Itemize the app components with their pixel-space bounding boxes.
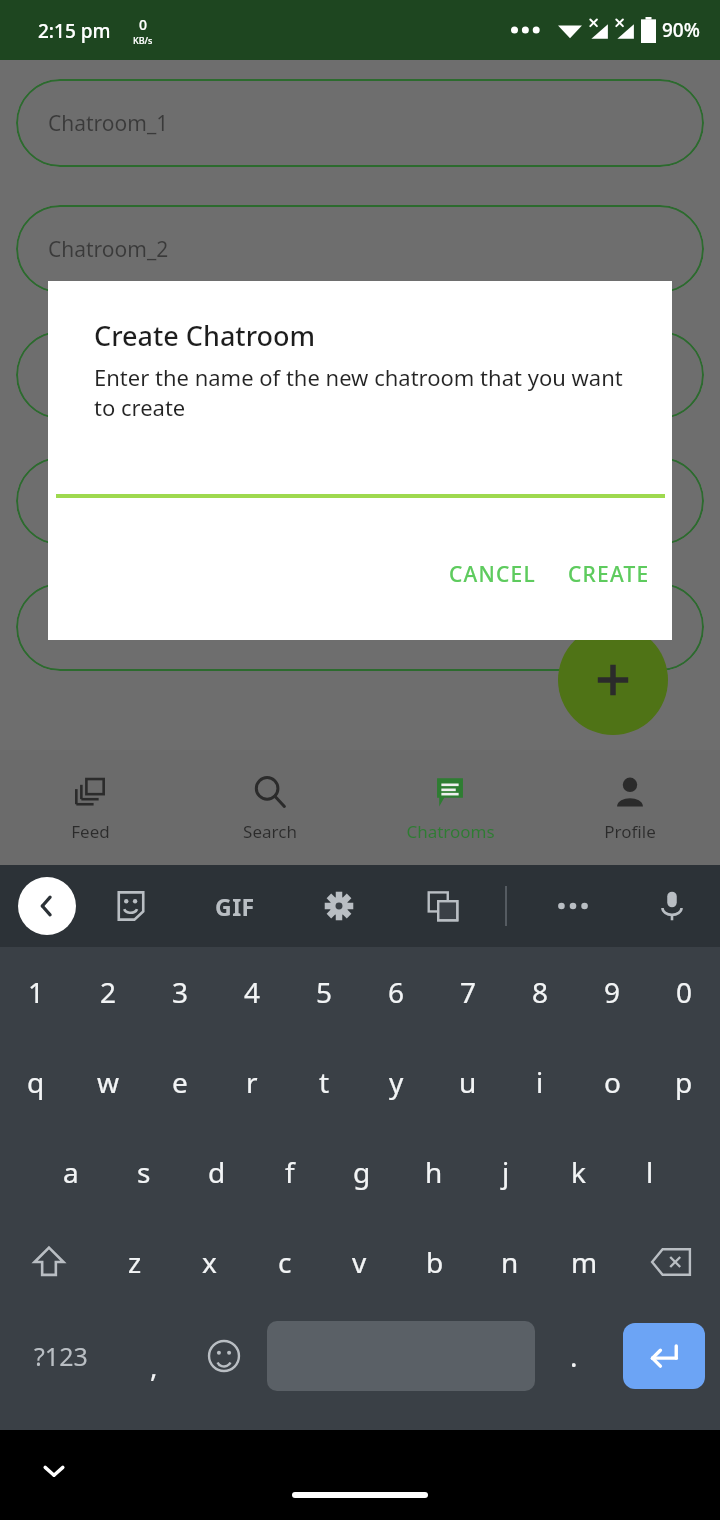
staticText: 0 xyxy=(676,973,693,1011)
button[interactable]: 5 xyxy=(288,947,360,1037)
staticText: 7 xyxy=(460,973,477,1011)
staticText: Search xyxy=(243,820,297,843)
staticText: c xyxy=(278,1243,292,1281)
button[interactable]: o xyxy=(576,1037,648,1127)
staticText: g xyxy=(353,1153,371,1191)
staticText: s xyxy=(137,1153,151,1191)
staticText: 8 xyxy=(532,973,549,1011)
button[interactable]: s xyxy=(107,1127,180,1217)
button[interactable]: Search xyxy=(180,750,360,865)
button[interactable]: y xyxy=(360,1037,432,1127)
button[interactable]: 1 xyxy=(0,947,72,1037)
staticText: n xyxy=(501,1243,519,1281)
staticText: b xyxy=(426,1243,444,1281)
button[interactable]: 8 xyxy=(504,947,576,1037)
staticText: e xyxy=(172,1063,188,1101)
staticText: GIF xyxy=(215,891,255,922)
staticText: i xyxy=(536,1063,544,1101)
button[interactable]: Chatroom_1 xyxy=(16,79,704,167)
button[interactable]: i xyxy=(504,1037,576,1127)
button[interactable]: h xyxy=(398,1127,470,1217)
button[interactable]: Back xyxy=(18,877,76,935)
button[interactable]: Settings xyxy=(311,878,367,934)
button[interactable]: Create chatroom xyxy=(558,625,668,735)
staticText: 4 xyxy=(244,973,261,1011)
button[interactable]: 9 xyxy=(576,947,648,1037)
button[interactable]: More options xyxy=(545,878,601,934)
button[interactable]: 4 xyxy=(216,947,288,1037)
staticText: 3 xyxy=(172,973,189,1011)
button[interactable]: Stickers xyxy=(103,878,159,934)
button[interactable]: v xyxy=(322,1217,397,1307)
button[interactable]: 2 xyxy=(72,947,144,1037)
button[interactable]: 0 xyxy=(648,947,720,1037)
button[interactable]: c xyxy=(247,1217,322,1307)
button[interactable]: GIF xyxy=(207,883,263,930)
staticText: 9 xyxy=(604,973,621,1011)
button[interactable]: Hide keyboard xyxy=(28,1445,80,1497)
button[interactable]: d xyxy=(180,1127,253,1217)
button[interactable]: x xyxy=(172,1217,247,1307)
button[interactable]: m xyxy=(547,1217,622,1307)
button[interactable]: z xyxy=(97,1217,172,1307)
staticText: Profile xyxy=(604,820,656,843)
button[interactable]: Feed xyxy=(0,750,180,865)
staticText: Create Chatroom xyxy=(94,317,316,354)
button[interactable]: g xyxy=(326,1127,398,1217)
staticText: k xyxy=(571,1153,586,1191)
button[interactable]: a xyxy=(34,1127,107,1217)
button[interactable]: 7 xyxy=(432,947,504,1037)
button[interactable]: k xyxy=(542,1127,614,1217)
button[interactable]: 6 xyxy=(360,947,432,1037)
staticText: f xyxy=(285,1153,295,1191)
staticText: 6 xyxy=(388,973,405,1011)
button[interactable]: . xyxy=(541,1307,607,1404)
button[interactable]: 3 xyxy=(144,947,216,1037)
button[interactable]: Chatrooms xyxy=(360,750,540,865)
button[interactable]: Profile xyxy=(540,750,720,865)
staticText: . xyxy=(570,1337,578,1375)
button[interactable]: Shift xyxy=(0,1217,97,1307)
button[interactable]: Chatroom_5 xyxy=(16,583,704,671)
button[interactable]: t xyxy=(288,1037,360,1127)
button[interactable]: w xyxy=(72,1037,144,1127)
button[interactable]: n xyxy=(472,1217,547,1307)
button[interactable]: Chatroom_2 xyxy=(16,205,704,293)
staticText: z xyxy=(128,1243,142,1281)
button[interactable]: p xyxy=(648,1037,720,1127)
button[interactable]: q xyxy=(0,1037,72,1127)
staticText: Feed xyxy=(71,820,110,843)
button[interactable]: f xyxy=(253,1127,326,1217)
staticText: x xyxy=(202,1243,217,1281)
button[interactable]: e xyxy=(144,1037,216,1127)
staticText: Chatroom_2 xyxy=(48,235,169,264)
staticText: Enter the name of the new chatroom that … xyxy=(94,362,636,422)
button[interactable]: Translate xyxy=(415,878,471,934)
staticText: t xyxy=(319,1063,330,1101)
button[interactable]: ?123 xyxy=(0,1307,121,1404)
button[interactable]: l xyxy=(614,1127,686,1217)
staticText: KB/s xyxy=(133,34,153,46)
button[interactable]: r xyxy=(216,1037,288,1127)
button[interactable]: Chatroom_3 xyxy=(16,331,704,419)
button[interactable]: Chatroom_4 xyxy=(16,457,704,545)
staticText: CREATE xyxy=(568,560,650,589)
button[interactable]: CANCEL xyxy=(437,550,548,599)
button[interactable]: , xyxy=(121,1307,187,1404)
button[interactable]: j xyxy=(470,1127,542,1217)
button[interactable]: Backspace xyxy=(622,1217,720,1307)
button[interactable]: u xyxy=(432,1037,504,1127)
staticText: Chatroom_1 xyxy=(48,109,169,138)
staticText: 0 xyxy=(139,15,148,34)
button[interactable]: Voice input xyxy=(644,878,700,934)
staticText: q xyxy=(27,1063,45,1101)
button[interactable]: CREATE xyxy=(556,550,662,599)
button[interactable]: Enter xyxy=(623,1323,705,1389)
staticText: ?123 xyxy=(34,1339,88,1373)
staticText: 5 xyxy=(316,973,333,1011)
button[interactable]: Emoji xyxy=(187,1307,261,1404)
button[interactable]: b xyxy=(397,1217,472,1307)
staticText: , xyxy=(150,1347,158,1385)
